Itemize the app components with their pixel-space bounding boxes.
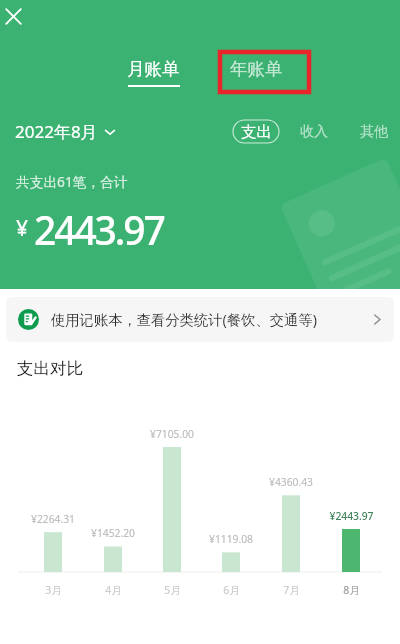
button[interactable]: 2022年8月 bbox=[15, 120, 116, 143]
staticText: ¥7105.00 bbox=[150, 427, 194, 441]
staticText: ¥2443.97 bbox=[329, 509, 374, 523]
staticText: 使用记账本，查看分类统计(餐饮、交通等) bbox=[51, 310, 317, 330]
button[interactable]: 月账单 bbox=[121, 58, 185, 90]
staticText: 4月 bbox=[105, 583, 122, 597]
staticText: ¥4360.43 bbox=[269, 475, 313, 489]
staticText: 8月 bbox=[343, 583, 360, 597]
staticText: ¥1452.20 bbox=[91, 526, 135, 540]
staticText: 支出 bbox=[241, 122, 272, 142]
staticText: 5月 bbox=[164, 583, 181, 597]
staticText: 7月 bbox=[283, 583, 300, 597]
button[interactable]: 使用记账本，查看分类统计(餐饮、交通等) bbox=[6, 297, 394, 342]
staticText: 2443.97 bbox=[34, 203, 164, 256]
button[interactable]: Close bbox=[0, 3, 27, 30]
button[interactable]: 支出 bbox=[233, 120, 279, 143]
staticText: 3月 bbox=[45, 583, 62, 597]
staticText: 共支出61笔，合计 bbox=[16, 172, 128, 191]
button[interactable]: 年账单 bbox=[224, 58, 288, 82]
staticText: 2022年8月 bbox=[15, 120, 98, 143]
staticText: ¥ bbox=[16, 214, 29, 243]
staticText: ¥2264.31 bbox=[31, 512, 75, 526]
button[interactable]: 其他 bbox=[354, 120, 394, 143]
button[interactable]: 收入 bbox=[294, 120, 334, 143]
staticText: 其他 bbox=[360, 123, 388, 141]
staticText: 月账单 bbox=[127, 58, 180, 80]
staticText: 6月 bbox=[223, 583, 240, 597]
staticText: 年账单 bbox=[230, 58, 283, 80]
staticText: 收入 bbox=[300, 123, 328, 141]
staticText: ¥1119.08 bbox=[209, 532, 253, 546]
staticText: 支出对比 bbox=[17, 358, 83, 379]
